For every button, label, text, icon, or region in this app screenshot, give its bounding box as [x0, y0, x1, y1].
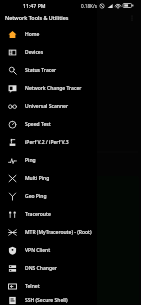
- button[interactable]: Network Change Tracer: [0, 79, 97, 97]
- button[interactable]: Speed Test: [0, 115, 97, 133]
- staticText: Devices: [25, 49, 44, 56]
- staticText: Network Tools & Utilities: [5, 14, 69, 21]
- button[interactable]: Home: [0, 25, 97, 43]
- staticText: fe80::1%wlan0: [5, 86, 35, 92]
- staticText: Traceroute: [25, 211, 51, 218]
- staticText: MTR (MyTraceroute) - (Root): [25, 229, 92, 236]
- button[interactable]: Open navigation menu: [4, 14, 12, 22]
- button[interactable]: Multi Ping: [0, 169, 97, 187]
- button[interactable]: Universal Scanner: [0, 97, 97, 115]
- staticText: Geo Ping: [25, 193, 47, 200]
- staticText: DNS Changer: [25, 265, 57, 272]
- staticText: Status Tracer: [25, 67, 57, 74]
- button[interactable]: Telnet: [0, 277, 97, 295]
- button[interactable]: Status Tracer: [0, 61, 97, 79]
- staticText: 11:47 PM: [23, 2, 46, 9]
- button[interactable]: iPerf V.2 / iPerf V.3: [0, 133, 97, 151]
- staticText: SSH (Secure Shell): [25, 297, 68, 304]
- staticText: Home: [25, 31, 40, 38]
- staticText: Network Change Tracer: [25, 85, 82, 92]
- button[interactable]: SSH (Secure Shell): [0, 295, 97, 305]
- button[interactable]: Ping: [0, 151, 97, 169]
- staticText: 198.299.0.0/24: [5, 65, 35, 71]
- staticText: Ping: [25, 157, 36, 164]
- button[interactable]: Geo Ping: [0, 187, 97, 205]
- staticText: Universal Scanner: [25, 103, 69, 110]
- button[interactable]: Traceroute: [0, 205, 97, 223]
- staticText: Telnet: [25, 283, 40, 290]
- button[interactable]: VPN Client: [0, 241, 97, 259]
- staticText: 192.168.1.254: [5, 72, 34, 78]
- button[interactable]: Devices: [0, 43, 97, 61]
- staticText: iPerf V.2 / iPerf V.3: [25, 139, 69, 146]
- button[interactable]: [2, 176, 139, 304]
- button[interactable]: DNS Changer: [0, 259, 97, 277]
- staticText: Multi Ping: [25, 175, 50, 182]
- staticText: VPN Client: [25, 247, 51, 254]
- staticText: Speed Test: [25, 121, 51, 128]
- staticText: 0.18K/s: [81, 3, 97, 9]
- staticText: VPN: [17, 14, 30, 22]
- button[interactable]: MTR (MyTraceroute) - (Root): [0, 223, 97, 241]
